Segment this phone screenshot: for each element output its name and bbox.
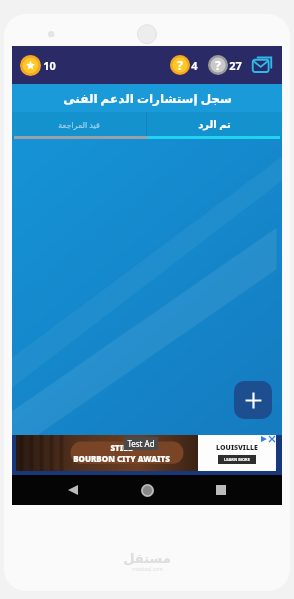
button[interactable]: Messages [250,53,274,77]
staticText: LOUISVILLE [216,443,258,453]
button[interactable]: ? [170,55,198,75]
button[interactable]: LEARN MORE [224,457,250,462]
button[interactable]: Add new consultation [234,381,272,419]
button[interactable]: ? [208,55,242,75]
button[interactable]: 10 [20,55,56,76]
staticText: LEARN MORE [224,457,250,462]
staticText: مستقل [123,551,171,566]
button[interactable]: Recent apps [208,477,234,503]
button[interactable]: Advertisement [12,435,282,475]
staticText: mostaql.com [132,566,163,573]
button[interactable]: Home [134,477,160,503]
staticText: STILL [110,442,133,453]
staticText: ? [177,57,183,74]
button[interactable]: قيد المراجعة [12,112,146,136]
staticText: BOURBON CITY AWAITS [73,453,170,464]
button[interactable]: Back [60,477,86,503]
button[interactable]: تم الرد [147,112,282,136]
staticText: ? [215,57,221,74]
staticText: قيد المراجعة [58,119,100,130]
staticText: 10 [43,58,56,73]
staticText: Test Ad [127,438,155,449]
staticText: 4 [191,58,198,73]
staticText: تم الرد [198,117,231,131]
staticText: سجل إستشارات الدعم الفنى [63,90,232,106]
staticText: 27 [229,58,242,73]
